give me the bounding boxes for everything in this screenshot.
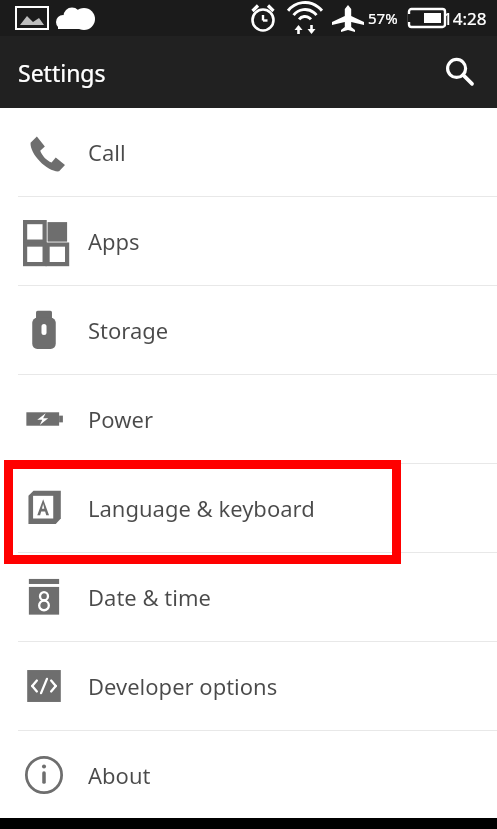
staticText: Language & keyboard (88, 493, 315, 523)
staticText: Power (88, 404, 153, 434)
staticText: Date & time (88, 582, 211, 612)
button[interactable]: Search (435, 48, 483, 96)
button[interactable]: Developer options (0, 642, 497, 730)
staticText: Developer options (88, 671, 278, 701)
button[interactable]: About (0, 731, 497, 818)
button[interactable]: Date & time (0, 553, 497, 641)
staticText: Call (88, 137, 126, 167)
staticText: Storage (88, 315, 169, 345)
staticText: Settings (18, 57, 106, 88)
button[interactable]: Apps (0, 197, 497, 285)
button[interactable]: Call (0, 108, 497, 196)
button[interactable]: Power (0, 375, 497, 463)
button[interactable]: Storage (0, 286, 497, 374)
staticText: Apps (88, 226, 140, 256)
staticText: About (88, 760, 151, 790)
button[interactable]: Language & keyboard (0, 464, 497, 552)
staticText: 57% (368, 8, 398, 28)
staticText: 14:28 (443, 7, 487, 30)
